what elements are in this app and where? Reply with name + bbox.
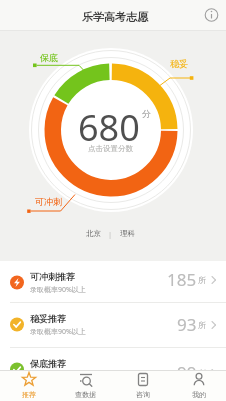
button[interactable]: 推荐 — [0, 370, 57, 401]
button[interactable]: 咨询 — [114, 370, 171, 401]
staticText: 分 — [142, 108, 151, 119]
staticText: 680 — [78, 103, 140, 152]
staticText: 保底 — [40, 52, 58, 63]
staticText: 稳妥 — [170, 58, 188, 69]
button[interactable]: 680 — [0, 103, 226, 152]
staticText: 保底推荐 — [30, 358, 66, 369]
staticText: 理科 — [120, 229, 135, 238]
staticText: 所 — [198, 368, 206, 378]
staticText: 点击设置分数 — [88, 144, 133, 153]
staticText: 查数据 — [75, 390, 96, 399]
staticText: 咨询 — [136, 390, 150, 399]
staticText: 北京 — [86, 229, 101, 238]
staticText: 稳妥推荐 — [30, 313, 66, 324]
staticText: 录取概率90%以上 — [30, 372, 86, 382]
button[interactable]: 我的 — [171, 370, 226, 401]
button[interactable]: 稳妥推荐 — [0, 303, 226, 346]
staticText: 可冲刺 — [35, 196, 62, 207]
staticText: 录取概率90%以上 — [30, 327, 86, 337]
button[interactable]: 查数据 — [57, 370, 114, 401]
staticText: 可冲刺推荐 — [30, 271, 75, 282]
button[interactable]: 北京 — [0, 229, 223, 239]
staticText: 推荐 — [22, 390, 36, 399]
staticText: 所 — [198, 320, 206, 330]
staticText: 录取概率90%以上 — [30, 285, 86, 295]
staticText: 99 — [177, 361, 197, 384]
button[interactable]: 保底推荐 — [0, 348, 226, 391]
staticText: | — [108, 229, 113, 239]
staticText: 我的 — [192, 390, 206, 399]
button[interactable] — [200, 2, 226, 28]
staticText: 185 — [167, 268, 197, 291]
staticText: 93 — [177, 313, 197, 336]
staticText: 所 — [198, 275, 206, 285]
staticText: 乐学高考志愿 — [82, 10, 148, 24]
button[interactable]: 可冲刺推荐 — [0, 261, 226, 304]
